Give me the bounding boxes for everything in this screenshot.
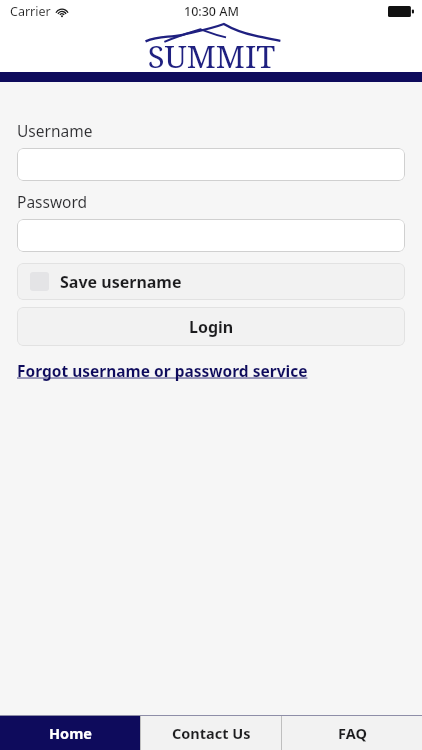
button[interactable]	[17, 219, 405, 252]
staticText: Forgot username or password service	[17, 360, 308, 381]
staticText: Password	[17, 191, 88, 212]
staticText: Login	[189, 316, 234, 338]
staticText: FAQ	[338, 723, 367, 743]
button[interactable]: Login	[17, 307, 405, 346]
staticText: Contact Us	[172, 723, 251, 743]
staticText: Home	[49, 723, 92, 743]
staticText: Username	[17, 120, 93, 141]
button[interactable]: Save username	[17, 263, 405, 300]
staticText: SUMMIT	[139, 35, 284, 72]
button[interactable]: Contact Us	[141, 716, 281, 750]
staticText: 10:30 AM	[184, 3, 239, 20]
button[interactable]: FAQ	[282, 716, 422, 750]
button[interactable]	[17, 148, 405, 181]
staticText: Save username	[60, 271, 182, 293]
button[interactable]: Forgot username or password service	[17, 360, 308, 381]
staticText: Carrier	[10, 3, 51, 20]
button[interactable]: Home	[0, 716, 140, 750]
